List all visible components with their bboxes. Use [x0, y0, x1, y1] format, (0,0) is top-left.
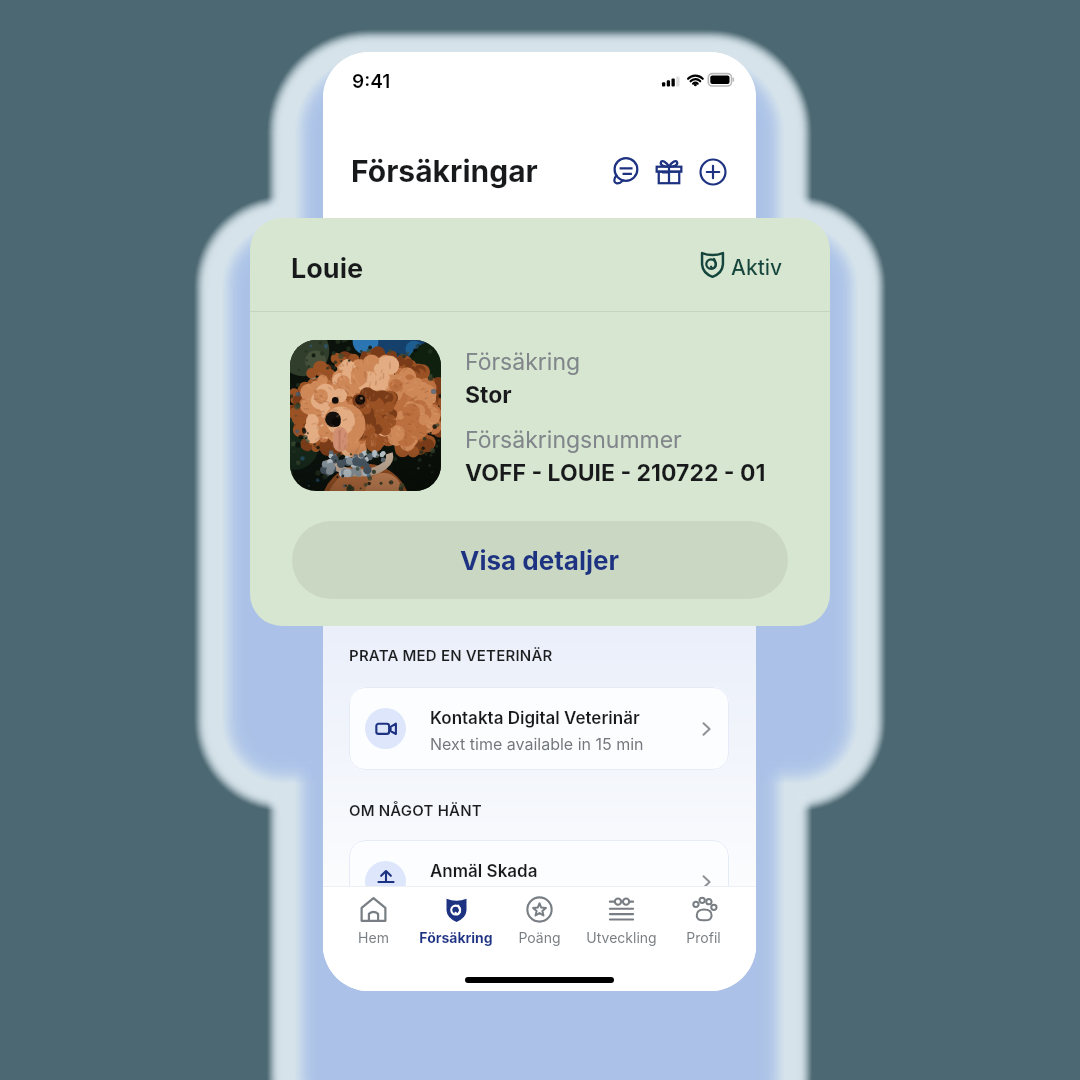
- button[interactable]: Add pet: [695, 154, 731, 190]
- button[interactable]: Messages: [607, 154, 643, 190]
- button[interactable]: Utveckling: [580, 896, 662, 948]
- staticText: Profil: [686, 929, 721, 946]
- button[interactable]: Profil: [662, 896, 744, 948]
- staticText: Försäkring: [465, 348, 581, 376]
- button[interactable]: Poäng: [498, 896, 580, 948]
- staticText: Next time available in 15 min: [430, 734, 644, 753]
- staticText: 9:41: [352, 70, 391, 93]
- staticText: Hem: [358, 929, 389, 946]
- staticText: Försäkring: [419, 929, 493, 946]
- staticText: Försäkringar: [351, 153, 538, 189]
- button[interactable]: Hem: [332, 896, 414, 948]
- button[interactable]: Visa detaljer: [292, 521, 788, 599]
- staticText: VOFF - LOUIE - 210722 - 01: [465, 459, 766, 487]
- staticText: Stor: [465, 381, 512, 409]
- staticText: Försäkringsnummer: [465, 426, 682, 454]
- staticText: Utveckling: [586, 929, 657, 946]
- button[interactable]: Försäkring: [415, 896, 497, 948]
- button[interactable]: Anmäl Skada: [349, 840, 729, 923]
- staticText: PRATA MED EN VETERINÄR: [349, 646, 553, 664]
- staticText: OM NÅGOT HÄNT: [349, 801, 482, 819]
- staticText: Poäng: [518, 929, 561, 946]
- staticText: Louie: [291, 252, 364, 285]
- button[interactable]: Kontakta Digital Veterinär: [349, 687, 729, 770]
- button[interactable]: Gifts: [651, 154, 687, 190]
- staticText: Anmäl Skada: [430, 861, 538, 882]
- staticText: Kontakta Digital Veterinär: [430, 708, 640, 729]
- staticText: Aktiv: [731, 255, 783, 280]
- staticText: Visa detaljer: [460, 545, 620, 576]
